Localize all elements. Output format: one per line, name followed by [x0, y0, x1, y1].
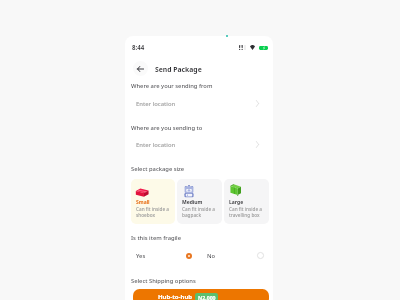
staticText: Select Shipping options — [131, 277, 196, 285]
staticText: Medium — [182, 199, 203, 206]
staticText: Can fit inside a travelling box — [229, 206, 263, 218]
staticText: Send Package — [155, 65, 202, 74]
staticText: Can fit inside a shoebox — [136, 206, 170, 218]
staticText: Where are you sending to — [131, 124, 203, 132]
button[interactable]: Enter location — [131, 136, 269, 151]
staticText: Enter location — [136, 100, 176, 108]
staticText: N2,000 — [198, 294, 216, 300]
staticText: Yes — [136, 252, 146, 260]
staticText: Can fit inside a bagpack — [182, 206, 216, 218]
staticText: Small — [136, 199, 150, 206]
button[interactable]: Small — [131, 179, 175, 224]
staticText: Enter location — [136, 141, 176, 149]
button[interactable]: Medium — [177, 179, 222, 224]
button[interactable]: Enter location — [131, 95, 269, 110]
staticText: No — [207, 252, 216, 260]
button[interactable]: Large — [224, 179, 269, 224]
staticText: Select package size — [131, 165, 185, 173]
staticText: Large — [229, 199, 244, 206]
button[interactable]: Yes — [131, 249, 199, 262]
button[interactable]: Back — [133, 61, 148, 76]
button[interactable]: Hub-to-hub — [133, 289, 269, 300]
staticText: Where are your sending from — [131, 82, 213, 90]
staticText: Hub-to-hub — [158, 293, 193, 300]
button[interactable]: No — [202, 249, 270, 262]
staticText: 8:44 — [132, 43, 145, 51]
staticText: Is this item fragile — [131, 234, 182, 242]
